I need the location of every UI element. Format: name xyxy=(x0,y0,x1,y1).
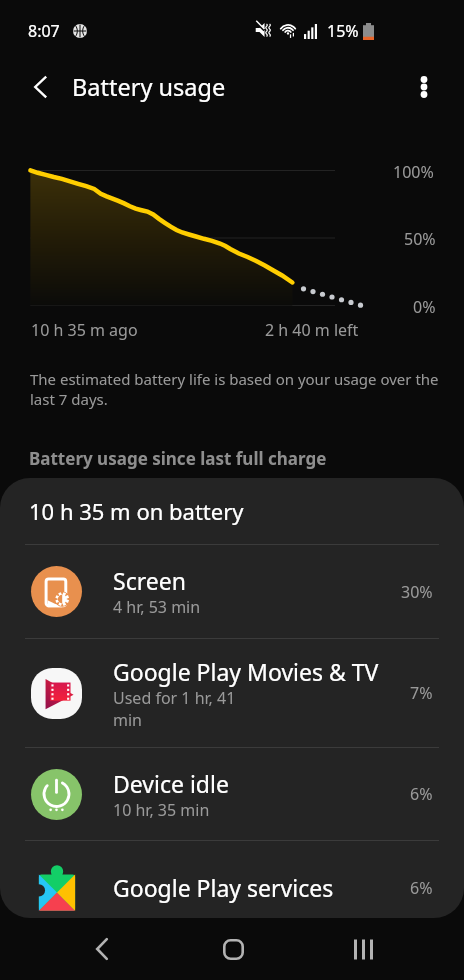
button[interactable]: Back xyxy=(70,918,134,980)
staticText: Screen xyxy=(113,565,186,596)
staticText: Used for 1 hr, 41 min xyxy=(113,687,263,731)
staticText: 6% xyxy=(410,783,433,805)
staticText: 10 h 35 m on battery xyxy=(29,496,244,526)
button[interactable]: Recent apps xyxy=(331,918,395,980)
staticText: 7% xyxy=(410,682,433,704)
staticText: Battery usage since last full charge xyxy=(29,447,327,470)
button[interactable]: Device idle xyxy=(0,748,464,840)
staticText: 8:07 xyxy=(28,20,60,42)
staticText: 2 h 40 m left xyxy=(265,319,359,341)
button[interactable]: Screen xyxy=(0,545,464,638)
staticText: The estimated battery life is based on y… xyxy=(30,369,440,409)
staticText: 0% xyxy=(413,296,436,318)
staticText: Google Play Movies & TV xyxy=(113,656,379,687)
staticText: 6% xyxy=(410,877,433,899)
staticText: Battery usage xyxy=(72,71,226,103)
staticText: Google Play services xyxy=(113,872,334,903)
staticText: 100% xyxy=(393,161,434,183)
staticText: 10 h 35 m ago xyxy=(31,319,138,341)
button[interactable]: Google Play services xyxy=(0,849,464,918)
staticText: 10 hr, 35 min xyxy=(113,799,263,821)
staticText: 30% xyxy=(401,581,433,603)
staticText: 4 hr, 53 min xyxy=(113,596,263,618)
button[interactable]: More options xyxy=(402,65,446,109)
staticText: 50% xyxy=(404,228,436,250)
staticText: 15% xyxy=(327,20,359,42)
button[interactable]: Navigate up xyxy=(18,64,64,110)
staticText: Device idle xyxy=(113,768,229,799)
button[interactable]: Google Play Movies & TV xyxy=(0,639,464,747)
button[interactable]: Home xyxy=(201,918,265,980)
